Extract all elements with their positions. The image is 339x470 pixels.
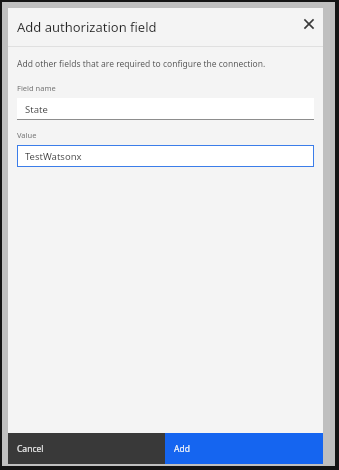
staticText: Cancel [17,443,44,455]
staticText: Value [17,130,37,140]
button[interactable]: Add [165,433,323,464]
staticText: TestWatsonx [25,150,82,163]
staticText: Field name [17,83,56,93]
staticText: State [25,103,48,116]
staticText: Add other fields that are required to co… [17,58,266,70]
staticText: Add [174,443,190,455]
button[interactable]: Cancel [8,433,165,464]
button[interactable]: State [17,98,314,120]
staticText: Add authorization field [17,18,157,36]
button[interactable]: TestWatsonx [17,145,314,167]
button[interactable]: Close [295,8,323,40]
